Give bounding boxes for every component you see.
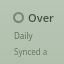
button[interactable]: Overview [0,0,64,64]
staticText: Synced a few moments ago [14,46,54,57]
staticText: Daily summary and recent activity [14,30,54,41]
staticText: Overview [28,10,54,25]
